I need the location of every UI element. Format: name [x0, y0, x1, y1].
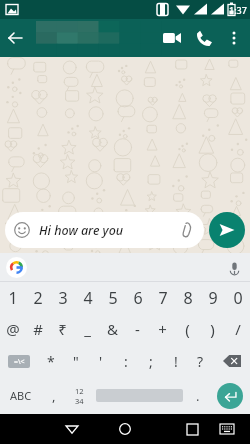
button[interactable]: 5 — [100, 282, 125, 313]
staticText: 5 — [108, 287, 118, 309]
staticText: ? — [197, 352, 204, 371]
button[interactable]: Video call — [156, 22, 188, 54]
button[interactable]: ) — [200, 313, 225, 345]
button[interactable]: 3 — [50, 282, 75, 313]
button[interactable]: ? — [188, 345, 213, 377]
staticText: " — [73, 352, 79, 371]
button[interactable]: _ — [75, 313, 100, 345]
button[interactable]: / — [225, 313, 250, 345]
staticText: 3 — [58, 287, 68, 309]
staticText: 4 — [83, 287, 93, 309]
staticText: + — [158, 319, 167, 339]
staticText: Hi how are you — [39, 222, 177, 239]
button[interactable]: Emoji — [5, 212, 204, 248]
button[interactable]: - — [125, 313, 150, 345]
staticText: _ — [84, 319, 91, 339]
button[interactable]: & — [100, 313, 125, 345]
button[interactable]: 1 — [0, 282, 25, 313]
button[interactable]: Attach — [177, 220, 197, 240]
button[interactable]: Back — [58, 415, 86, 443]
staticText: 8 — [183, 287, 193, 309]
staticText: ) — [210, 319, 215, 339]
button[interactable]: ' — [88, 345, 113, 377]
button[interactable]: More symbols — [0, 345, 38, 377]
button[interactable]: 6 — [125, 282, 150, 313]
button[interactable]: @ — [0, 313, 25, 345]
button[interactable]: Backspace — [213, 345, 250, 377]
button[interactable]: + — [150, 313, 175, 345]
button[interactable]: Call — [188, 22, 220, 54]
button[interactable]: 9 — [200, 282, 225, 313]
button[interactable]: Period — [186, 377, 209, 414]
button[interactable]: Back — [0, 23, 30, 53]
staticText: 9 — [208, 287, 218, 309]
staticText: ' — [99, 352, 103, 371]
button[interactable]: 7 — [150, 282, 175, 313]
button[interactable]: ! — [163, 345, 188, 377]
staticText: . — [196, 387, 200, 405]
staticText: # — [33, 319, 43, 339]
button[interactable]: Google — [6, 257, 27, 278]
button[interactable]: ABC — [0, 377, 42, 414]
staticText: ; — [149, 352, 153, 371]
button[interactable]: Contact — [36, 21, 161, 55]
staticText: 6 — [133, 287, 143, 309]
button[interactable]: Emoji — [12, 220, 32, 240]
button[interactable]: Numbers — [65, 377, 93, 414]
staticText: / — [235, 319, 241, 339]
button[interactable]: * — [38, 345, 63, 377]
button[interactable]: Send — [209, 212, 245, 248]
button[interactable]: ₹ — [50, 313, 75, 345]
staticText: : — [124, 352, 128, 371]
staticText: 1:37 — [229, 4, 247, 16]
button[interactable]: Space — [93, 377, 186, 414]
staticText: ( — [185, 319, 190, 339]
button[interactable]: Enter — [209, 377, 250, 414]
staticText: @ — [6, 319, 20, 339]
button[interactable]: Comma — [42, 377, 65, 414]
button[interactable]: More options — [220, 24, 248, 52]
button[interactable]: 8 — [175, 282, 200, 313]
staticText: * — [47, 352, 55, 371]
staticText: 0 — [233, 287, 243, 309]
staticText: & — [107, 319, 118, 339]
staticText: - — [135, 319, 140, 339]
staticText: ! — [174, 352, 178, 371]
button[interactable]: 2 — [25, 282, 50, 313]
staticText: 1 — [8, 287, 18, 309]
staticText: 34 — [75, 396, 84, 406]
button[interactable]: 4 — [75, 282, 100, 313]
button[interactable]: ( — [175, 313, 200, 345]
staticText: , — [52, 387, 56, 405]
button[interactable]: Hide keyboard — [214, 416, 240, 442]
button[interactable]: Home — [111, 415, 139, 443]
staticText: ₹ — [58, 319, 67, 339]
button[interactable]: 0 — [225, 282, 250, 313]
staticText: 12 — [75, 386, 84, 396]
staticText: ABC — [10, 388, 32, 403]
staticText: 7 — [158, 287, 168, 309]
staticText: =\< — [14, 357, 25, 367]
button[interactable]: # — [25, 313, 50, 345]
button[interactable]: Recents — [178, 415, 206, 443]
button[interactable]: : — [113, 345, 138, 377]
button[interactable]: Voice input — [223, 257, 245, 279]
button[interactable]: ; — [138, 345, 163, 377]
staticText: 2 — [33, 287, 43, 309]
button[interactable]: " — [63, 345, 88, 377]
